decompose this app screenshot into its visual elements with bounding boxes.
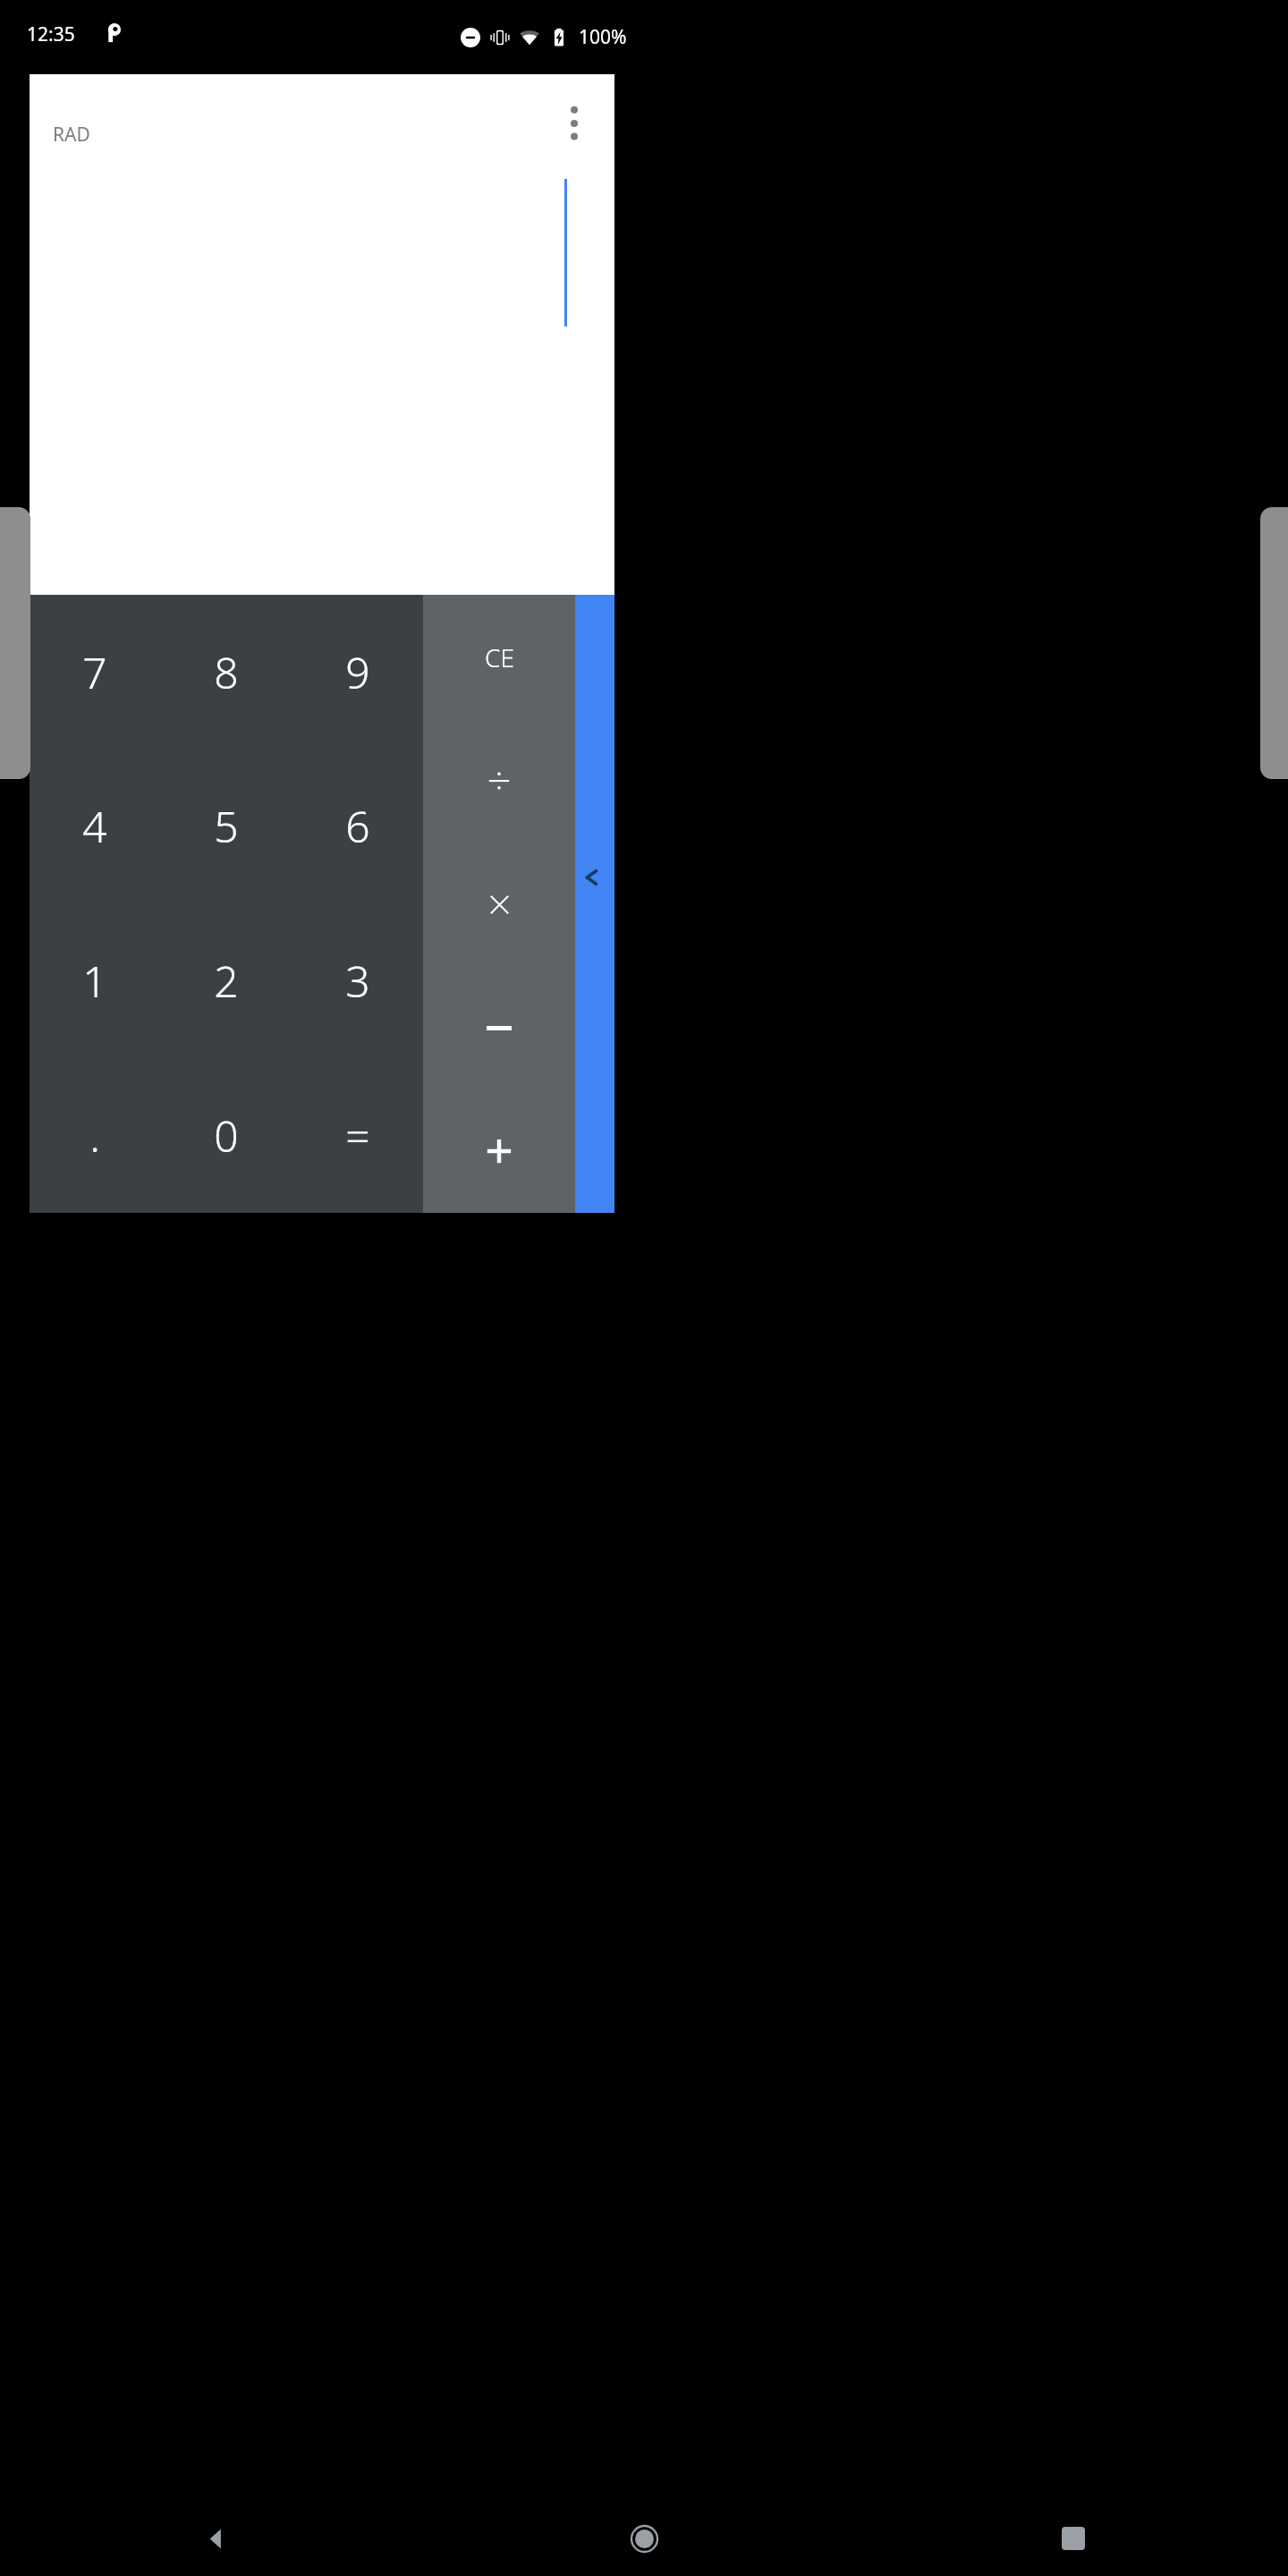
button[interactable]: operator [423,1089,575,1213]
button[interactable]: Recents [859,2501,1288,2576]
button[interactable]: 3 [292,903,423,1058]
staticText: 0 [214,1106,239,1165]
button[interactable]: 1 [30,903,160,1058]
button[interactable]: 2 [160,903,292,1058]
button[interactable]: operator [423,719,575,843]
button[interactable]: Home [429,2501,859,2576]
button[interactable]: 8 [160,595,292,749]
staticText: 8 [214,643,239,701]
button[interactable]: More options [552,101,597,146]
button[interactable]: Back [0,2501,429,2576]
staticText: 6 [345,797,370,855]
button[interactable]: 0 [160,1058,292,1213]
staticText: RAD [53,122,90,148]
staticText: 3 [345,952,370,1010]
button[interactable]: . [30,1058,160,1213]
button[interactable]: 4 [30,749,160,903]
button[interactable]: Open advanced pad [575,595,614,1213]
button[interactable]: CE [423,595,575,719]
staticText: . [89,1106,100,1165]
staticText: 1 [82,952,107,1010]
button[interactable]: 7 [30,595,160,749]
button[interactable]: 6 [292,749,423,903]
button[interactable]: 9 [292,595,423,749]
staticText: 7 [82,643,107,701]
staticText: CE [485,640,514,674]
button[interactable]: = [292,1058,423,1213]
button[interactable]: operator [423,843,575,966]
staticText: 2 [214,952,239,1010]
staticText: 5 [214,797,239,855]
staticText: 4 [82,797,107,855]
button[interactable]: operator [423,966,575,1089]
staticText: 12:35 [27,21,75,47]
staticText: 100% [579,24,627,50]
button[interactable]: 5 [160,749,292,903]
staticText: 9 [345,643,370,701]
staticText: = [345,1106,370,1165]
